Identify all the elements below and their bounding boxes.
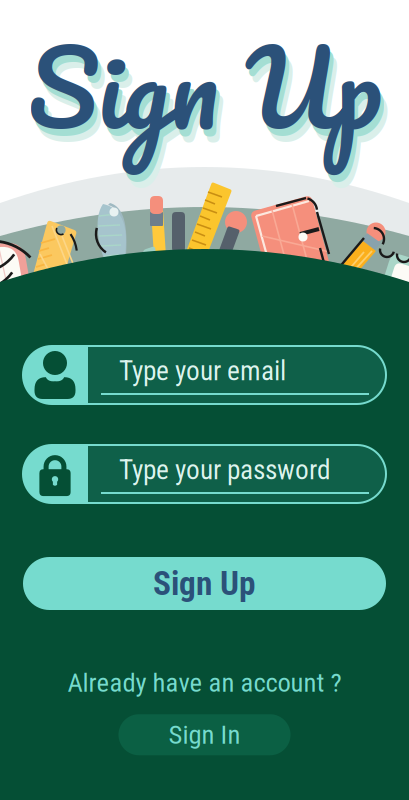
button[interactable]: Sign Up: [23, 557, 386, 610]
button[interactable]: Sign In: [118, 714, 290, 755]
button[interactable]: Type your password: [23, 445, 386, 503]
staticText: Sign Up: [34, 10, 388, 188]
staticText: Type your password: [119, 454, 331, 486]
staticText: Sign In: [168, 719, 240, 750]
staticText: Sign Up: [31, 4, 385, 182]
staticText: Sign Up: [27, 0, 381, 175]
button[interactable]: Type your email: [23, 346, 386, 404]
staticText: Already have an account ?: [67, 667, 341, 698]
staticText: Sign Up: [153, 564, 256, 603]
staticText: Type your email: [119, 355, 286, 387]
